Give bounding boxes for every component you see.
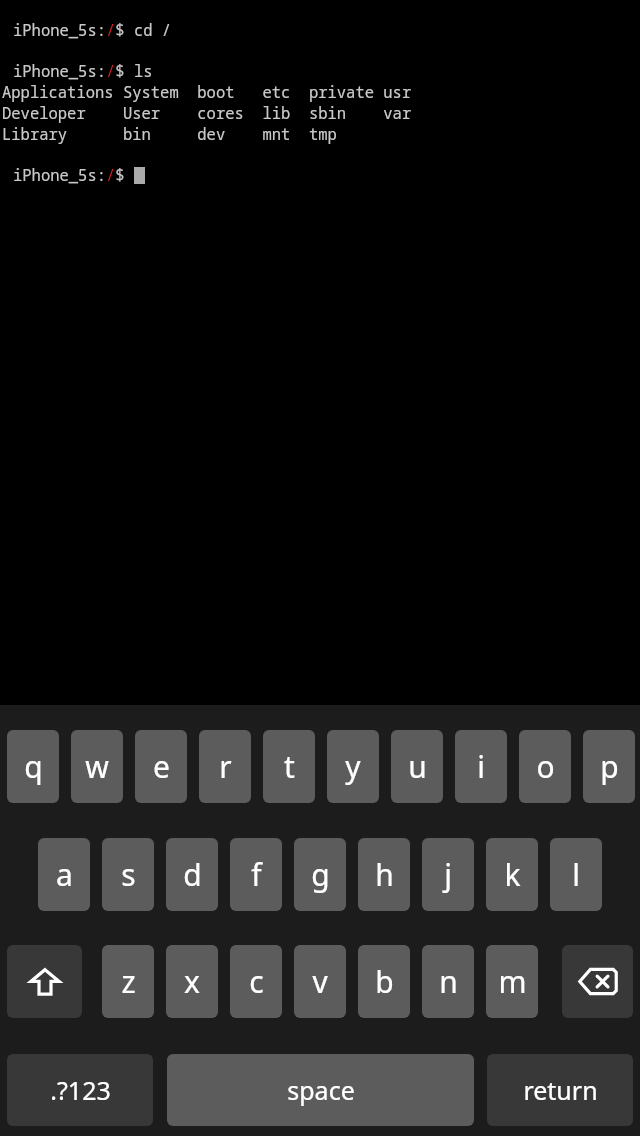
button[interactable]: q xyxy=(7,730,59,803)
button[interactable]: m xyxy=(486,945,538,1018)
staticText: b xyxy=(375,961,394,1002)
button[interactable]: n xyxy=(422,945,474,1018)
button[interactable]: c xyxy=(230,945,282,1018)
button[interactable]: u xyxy=(391,730,443,803)
staticText: m xyxy=(498,961,527,1002)
button[interactable]: j xyxy=(422,838,474,911)
button[interactable]: t xyxy=(263,730,315,803)
staticText: e xyxy=(153,746,170,787)
staticText: v xyxy=(312,961,328,1002)
staticText: p xyxy=(600,746,619,787)
staticText: a xyxy=(56,854,73,895)
staticText: z xyxy=(121,961,136,1002)
button[interactable]: Shift xyxy=(7,945,82,1018)
staticText: n xyxy=(439,961,458,1002)
staticText: q xyxy=(24,746,43,787)
button[interactable]: d xyxy=(166,838,218,911)
staticText: r xyxy=(219,746,232,787)
staticText: o xyxy=(536,746,555,787)
staticText: Applications System boot etc private usr xyxy=(2,81,412,102)
staticText: space xyxy=(287,1073,355,1107)
staticText: g xyxy=(311,854,330,895)
button[interactable]: e xyxy=(135,730,187,803)
staticText: h xyxy=(375,854,394,895)
button[interactable]: i xyxy=(455,730,507,803)
button[interactable]: w xyxy=(71,730,123,803)
button[interactable]: o xyxy=(519,730,571,803)
button[interactable]: p xyxy=(583,730,635,803)
button[interactable]: b xyxy=(358,945,410,1018)
button[interactable]: h xyxy=(358,838,410,911)
staticText: s xyxy=(121,854,136,895)
staticText: u xyxy=(408,746,427,787)
staticText: x xyxy=(184,961,200,1002)
staticText: l xyxy=(572,854,580,895)
staticText: Library bin dev mnt tmp xyxy=(2,123,337,144)
staticText: iPhone_5s:/$ cd / xyxy=(13,19,172,40)
staticText: return xyxy=(523,1073,598,1107)
button[interactable]: .?123 xyxy=(7,1054,153,1126)
button[interactable]: r xyxy=(199,730,251,803)
staticText: f xyxy=(251,854,262,895)
button[interactable]: v xyxy=(294,945,346,1018)
staticText: i xyxy=(477,746,485,787)
staticText: k xyxy=(504,854,521,895)
button[interactable]: iPhone_5s:/$ cd / xyxy=(0,0,640,705)
button[interactable]: a xyxy=(38,838,90,911)
staticText: c xyxy=(249,961,264,1002)
button[interactable]: k xyxy=(486,838,538,911)
button[interactable]: Backspace xyxy=(562,945,633,1018)
staticText: .?123 xyxy=(50,1073,111,1107)
button[interactable]: y xyxy=(327,730,379,803)
button[interactable]: s xyxy=(102,838,154,911)
staticText: iPhone_5s:/$ xyxy=(13,164,134,185)
staticText: j xyxy=(444,854,452,895)
staticText: y xyxy=(345,746,361,787)
button[interactable]: return xyxy=(487,1054,633,1126)
staticText: w xyxy=(85,746,109,787)
button[interactable]: x xyxy=(166,945,218,1018)
button[interactable]: z xyxy=(102,945,154,1018)
staticText: t xyxy=(284,746,295,787)
button[interactable]: f xyxy=(230,838,282,911)
staticText: iPhone_5s:/$ ls xyxy=(13,60,153,81)
staticText: Developer User cores lib sbin var xyxy=(2,102,412,123)
button[interactable]: g xyxy=(294,838,346,911)
staticText: d xyxy=(183,854,202,895)
button[interactable]: space xyxy=(167,1054,474,1126)
button[interactable]: l xyxy=(550,838,602,911)
